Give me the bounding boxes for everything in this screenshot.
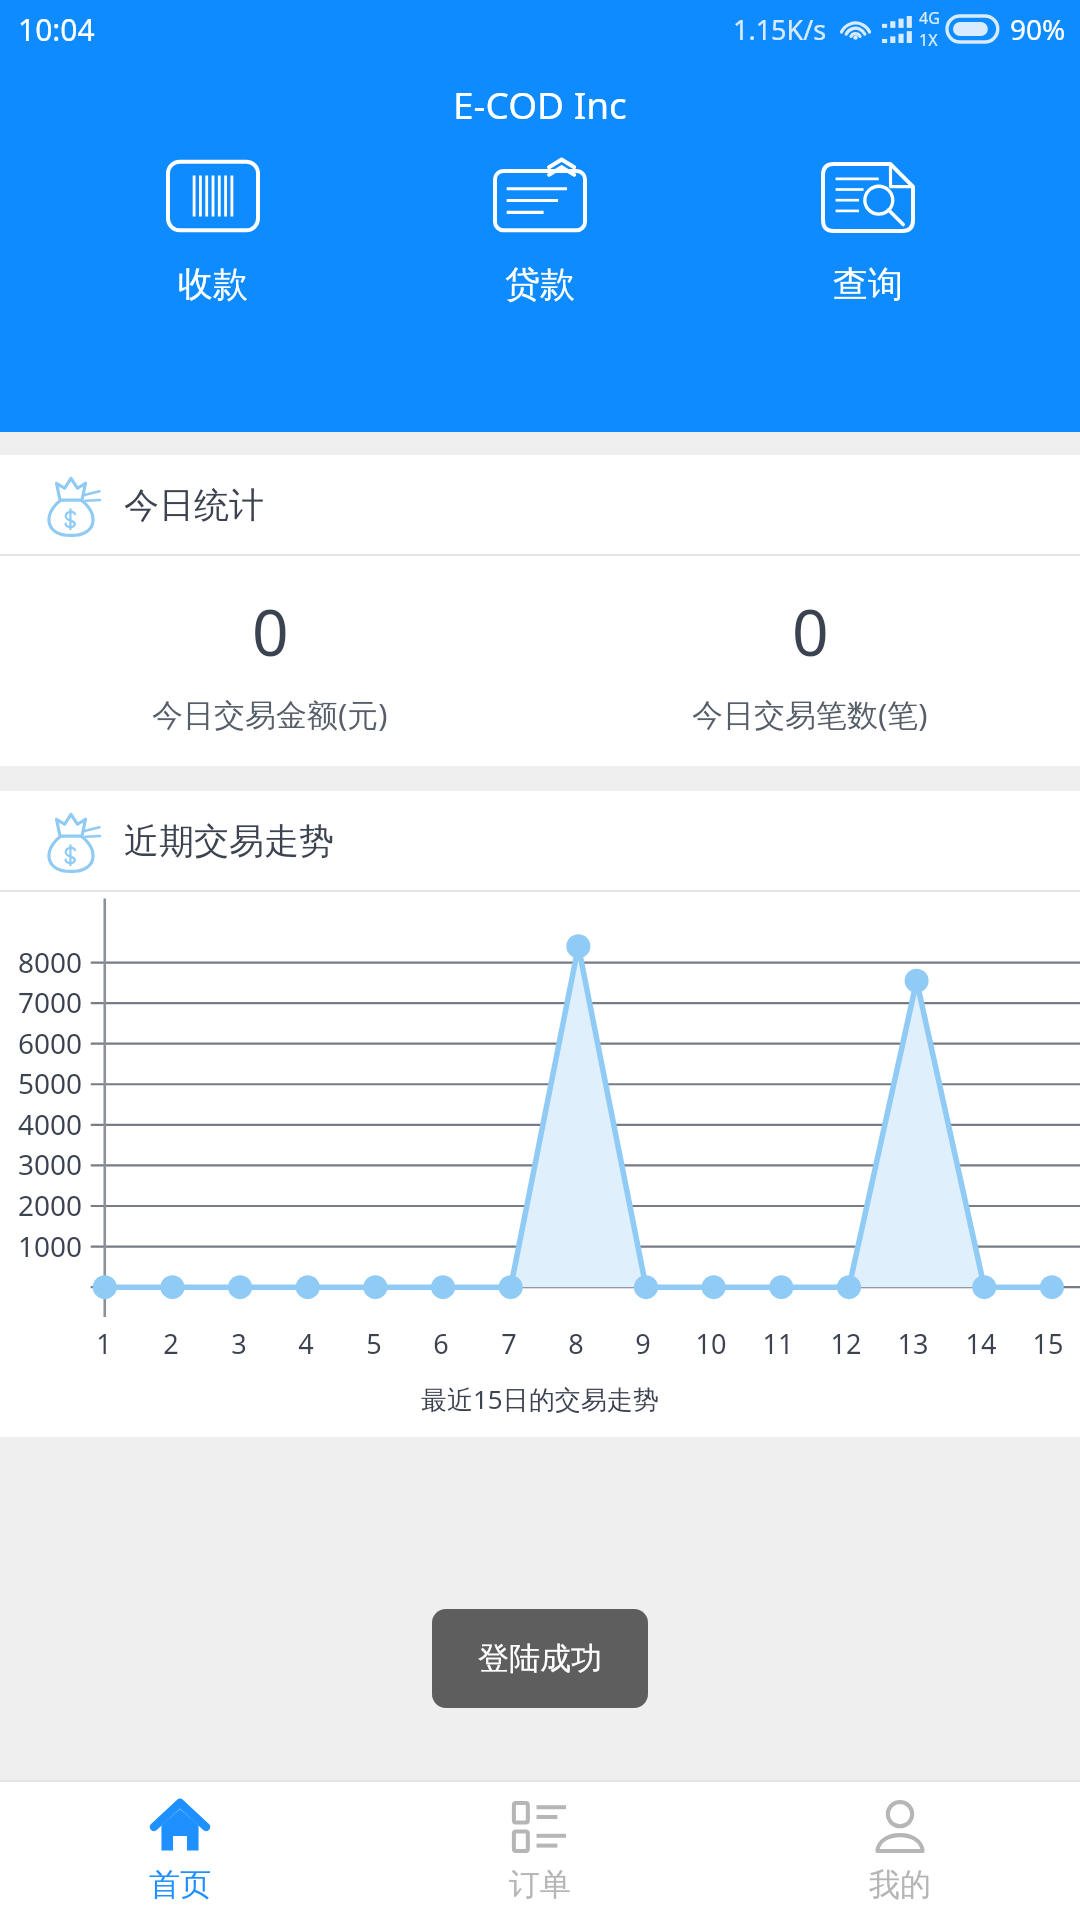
staticText: 近期交易走势 <box>124 819 334 863</box>
button[interactable]: 今日统计 <box>0 455 1080 554</box>
staticText: 8000 <box>18 943 83 981</box>
button[interactable]: 0 <box>0 556 540 766</box>
staticText: 0 <box>792 588 829 675</box>
staticText: 6000 <box>18 1024 83 1062</box>
button[interactable]: 贷款 <box>425 150 655 316</box>
staticText: 8 <box>557 1325 595 1362</box>
staticText: 5000 <box>18 1064 83 1102</box>
staticText: 我的 <box>869 1865 931 1904</box>
staticText: 收款 <box>178 262 248 306</box>
staticText: 2000 <box>18 1186 83 1224</box>
staticText: 14 <box>962 1325 1000 1362</box>
staticText: 1000 <box>18 1227 83 1265</box>
staticText: 最近15日的交易走势 <box>421 1381 659 1417</box>
staticText: 今日统计 <box>124 483 264 527</box>
staticText: 3 <box>220 1325 258 1362</box>
button[interactable]: 0 <box>540 556 1080 766</box>
staticText: 4 <box>287 1325 325 1362</box>
staticText: 5 <box>355 1325 393 1362</box>
staticText: 4000 <box>18 1105 83 1143</box>
staticText: 1 <box>85 1325 123 1362</box>
staticText: 查询 <box>833 262 903 306</box>
staticText: 11 <box>759 1325 797 1362</box>
staticText: 15 <box>1029 1325 1067 1362</box>
button[interactable]: 我的 <box>720 1782 1080 1920</box>
button[interactable]: 首页 <box>0 1782 360 1920</box>
staticText: 今日交易金额(元) <box>152 693 388 735</box>
button[interactable]: 查询 <box>753 150 983 316</box>
staticText: E-COD Inc <box>453 79 627 129</box>
staticText: 4G <box>919 7 940 29</box>
staticText: 10 <box>692 1325 730 1362</box>
button[interactable]: 订单 <box>360 1782 720 1920</box>
staticText: 9 <box>624 1325 662 1362</box>
button[interactable]: 登陆成功 <box>432 1609 648 1708</box>
staticText: 今日交易笔数(笔) <box>692 693 928 735</box>
staticText: 贷款 <box>505 262 575 306</box>
staticText: 3000 <box>18 1145 83 1183</box>
staticText: 7000 <box>18 983 83 1021</box>
staticText: 90% <box>1010 10 1066 48</box>
button[interactable]: 近期交易走势 <box>0 791 1080 890</box>
staticText: 2 <box>152 1325 190 1362</box>
button[interactable]: 收款 <box>98 150 328 316</box>
staticText: 13 <box>894 1325 932 1362</box>
staticText: 订单 <box>509 1865 571 1904</box>
staticText: 1X <box>919 29 938 51</box>
staticText: 10:04 <box>18 9 95 50</box>
staticText: 登陆成功 <box>478 1639 602 1678</box>
staticText: 12 <box>827 1325 865 1362</box>
staticText: 7 <box>490 1325 528 1362</box>
staticText: 0 <box>252 588 289 675</box>
staticText: 首页 <box>149 1865 211 1904</box>
staticText: 1.15K/s <box>733 11 827 48</box>
staticText: 6 <box>422 1325 460 1362</box>
